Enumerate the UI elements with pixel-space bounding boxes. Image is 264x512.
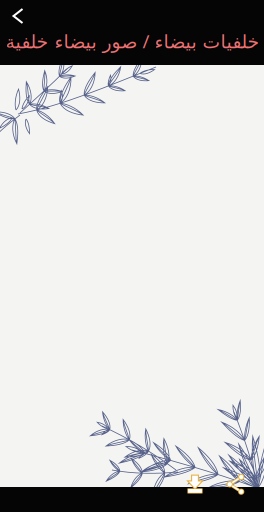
- staticText: خلفيات بيضاء / صور بيضاء خلفية: [5, 29, 259, 53]
- button[interactable]: Download: [180, 474, 210, 498]
- button[interactable]: Back: [0, 0, 36, 33]
- button[interactable]: Share: [220, 472, 250, 496]
